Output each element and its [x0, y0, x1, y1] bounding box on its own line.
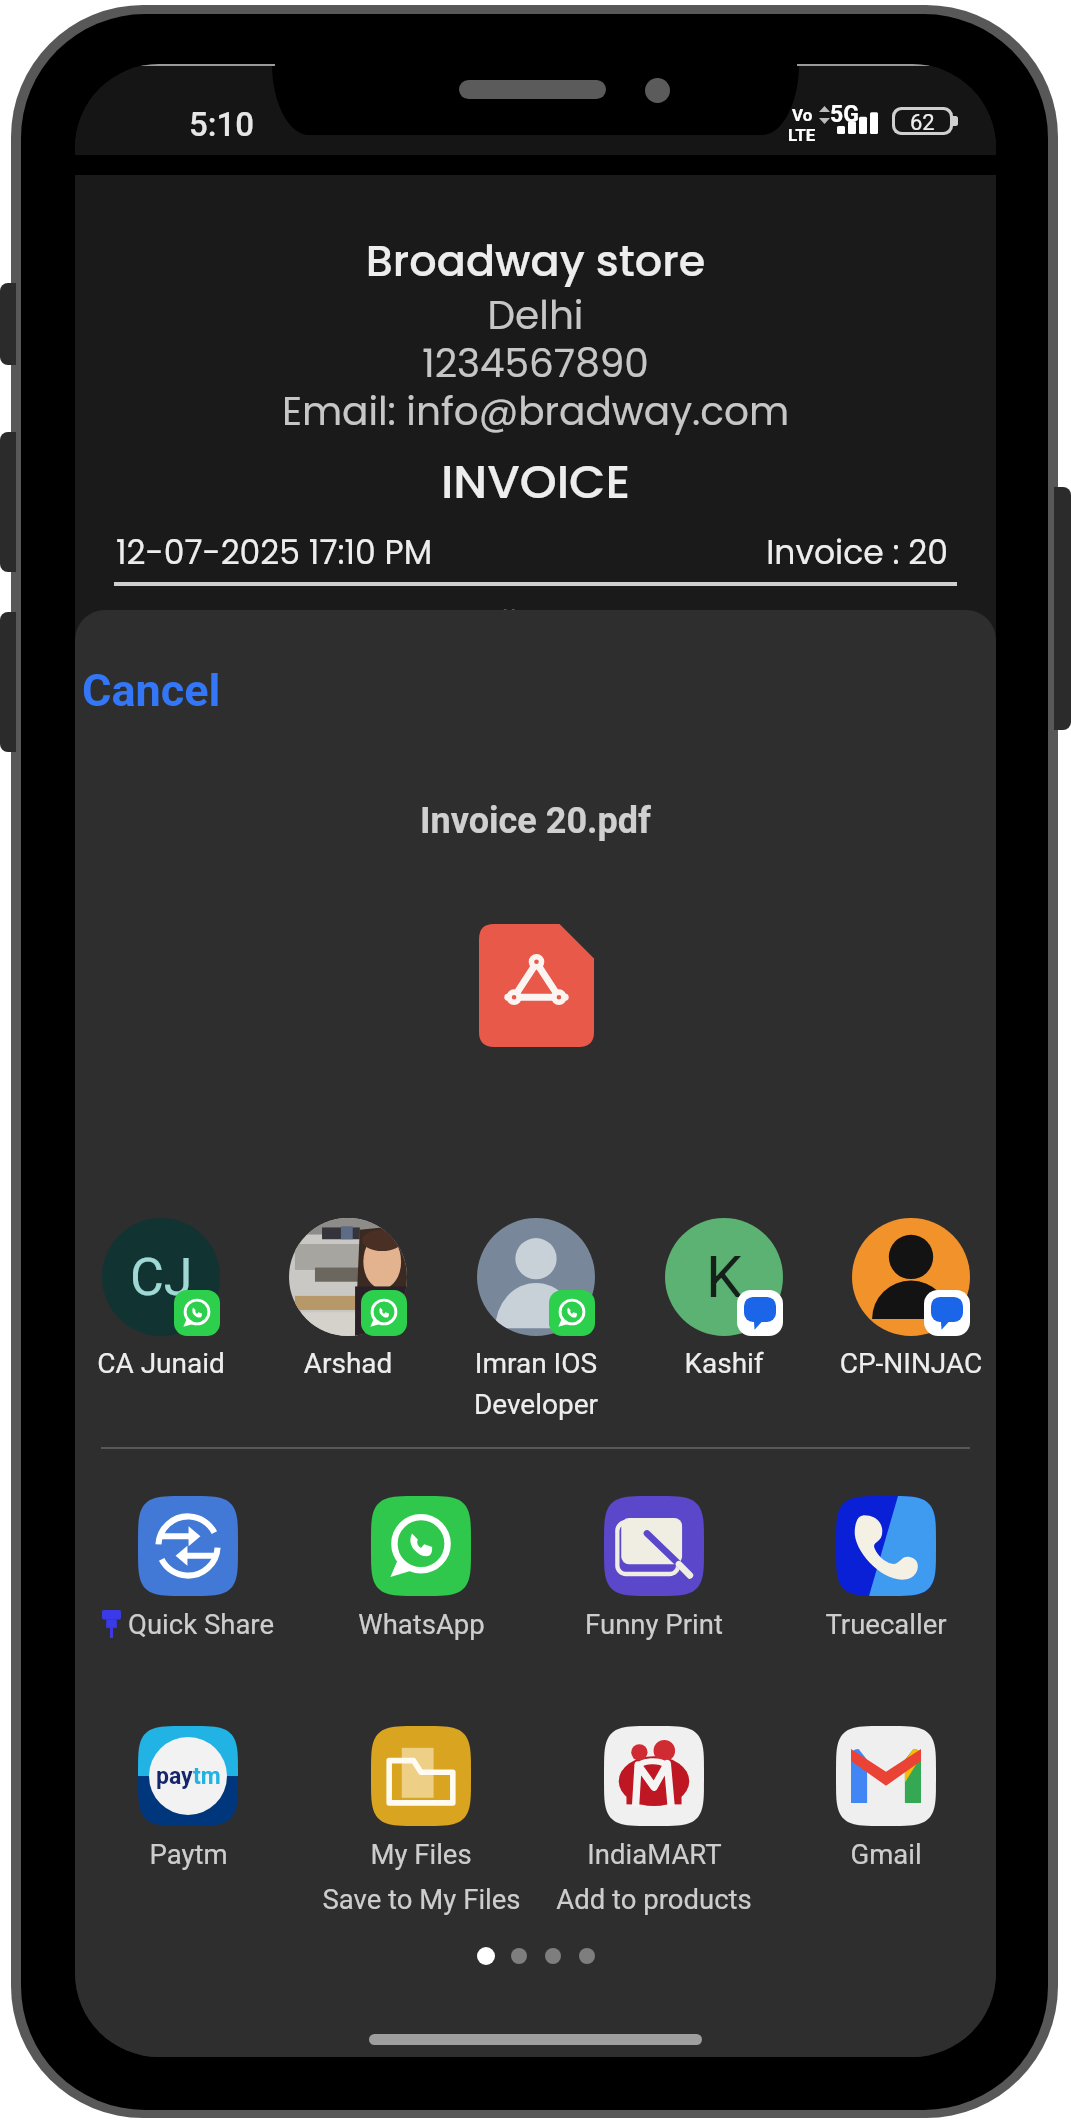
staticText: Truecaller	[825, 1608, 947, 1640]
staticText: Kashif	[634, 1347, 814, 1380]
staticText: 1234567890	[75, 336, 996, 391]
button[interactable]: pay	[75, 1726, 303, 1870]
button[interactable]: Gmail	[771, 1726, 996, 1870]
staticText: Funny Print	[585, 1608, 723, 1640]
button[interactable]: IndiaMART	[539, 1726, 769, 1915]
staticText: pay	[156, 1763, 193, 1790]
staticText: Invoice 20.pdf	[75, 800, 996, 842]
staticText: K	[706, 1243, 743, 1311]
staticText: Delhi	[75, 288, 996, 343]
button[interactable]: CP-NINJAC	[821, 1218, 996, 1380]
staticText: Gmail	[850, 1838, 922, 1870]
staticText: My Files	[370, 1838, 472, 1870]
other: Page 1 of 4	[75, 1947, 996, 1965]
staticText: Broadway store	[75, 231, 996, 291]
button[interactable]: Cancel	[76, 658, 227, 723]
staticText: Arshad	[258, 1347, 438, 1380]
staticText: Email: info@bradway.com	[75, 384, 996, 439]
staticText: 12-07-2025 17:10 PM	[116, 529, 433, 575]
button[interactable]: CJ	[75, 1218, 251, 1380]
staticText: IndiaMART	[587, 1838, 722, 1870]
button[interactable]: Truecaller	[771, 1496, 996, 1640]
button[interactable]: Invoice 20.pdf preview	[479, 924, 594, 1047]
staticText: 62	[910, 110, 935, 132]
staticText: INVOICE	[75, 449, 996, 515]
staticText: LTE	[788, 125, 816, 145]
staticText: Paytm	[149, 1838, 228, 1870]
staticText: Vo	[792, 105, 813, 125]
button[interactable]: Arshad	[258, 1218, 438, 1380]
button[interactable]: Funny Print	[539, 1496, 769, 1640]
staticText: Invoice : 20	[75, 529, 948, 575]
staticText: Imran IOS Developer	[446, 1347, 626, 1421]
staticText: Cancel	[82, 664, 221, 717]
staticText: CJ	[130, 1247, 193, 1308]
button[interactable]: Quick Share	[75, 1496, 303, 1640]
staticText: CP-NINJAC	[821, 1347, 996, 1380]
staticText: tm	[193, 1763, 221, 1790]
button[interactable]: K	[634, 1218, 814, 1380]
staticText: 5G	[830, 101, 859, 128]
button[interactable]: My Files	[306, 1726, 536, 1915]
button[interactable]: Imran IOS Developer	[446, 1218, 626, 1421]
staticText: 5:10	[189, 105, 254, 144]
staticText: CA Junaid	[75, 1347, 251, 1380]
staticText: Save to My Files	[322, 1883, 521, 1915]
staticText: Add to products	[556, 1883, 752, 1915]
staticText: WhatsApp	[358, 1608, 485, 1640]
staticText: Quick Share	[128, 1608, 274, 1640]
staticText: Item	[75, 599, 996, 641]
button[interactable]: WhatsApp	[306, 1496, 536, 1640]
